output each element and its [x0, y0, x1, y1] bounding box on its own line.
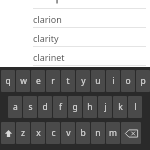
staticText: m	[109, 127, 117, 139]
button[interactable]: Shift	[1, 122, 15, 144]
staticText: c	[51, 127, 56, 139]
button[interactable]: f	[53, 96, 67, 118]
staticText: clarion	[33, 13, 62, 25]
button[interactable]: y	[76, 70, 90, 92]
button[interactable]: v	[61, 122, 75, 144]
staticText: k	[118, 101, 123, 113]
button[interactable]: b	[76, 122, 90, 144]
staticText: g	[72, 101, 78, 113]
staticText: v	[66, 127, 71, 139]
staticText: f	[59, 101, 62, 113]
button[interactable]: m	[106, 122, 120, 144]
staticText: q	[5, 75, 11, 87]
button[interactable]: q	[1, 70, 15, 92]
staticText: i	[112, 75, 115, 87]
staticText: b	[80, 127, 86, 139]
staticText: e	[36, 75, 41, 87]
button[interactable]: w	[16, 70, 30, 92]
button[interactable]: x	[31, 122, 45, 144]
button[interactable]: c	[46, 122, 60, 144]
staticText: w	[20, 75, 27, 87]
button[interactable]: e	[31, 70, 45, 92]
staticText: n	[95, 127, 101, 139]
button[interactable]: d	[38, 96, 52, 118]
button[interactable]	[0, 0, 150, 9]
button[interactable]: clarity	[0, 28, 150, 47]
button[interactable]: t	[61, 70, 75, 92]
button[interactable]: i	[106, 70, 120, 92]
button[interactable]: k	[113, 96, 127, 118]
button[interactable]: u	[91, 70, 105, 92]
button[interactable]: clarion	[0, 9, 150, 28]
staticText: p	[140, 75, 146, 87]
staticText: a	[13, 101, 18, 113]
button[interactable]: l	[128, 96, 142, 118]
staticText: clarinet	[33, 51, 65, 63]
staticText: h	[87, 101, 93, 113]
staticText: x	[36, 127, 41, 139]
staticText: u	[95, 75, 101, 87]
staticText: z	[21, 127, 25, 139]
staticText: s	[28, 101, 33, 113]
staticText: t	[66, 75, 70, 87]
staticText: j	[104, 101, 107, 113]
button[interactable]: p	[136, 70, 150, 92]
staticText: y	[81, 75, 86, 87]
button[interactable]: h	[83, 96, 97, 118]
button[interactable]: a	[8, 96, 22, 118]
staticText: r	[51, 75, 55, 87]
staticText: o	[125, 75, 131, 87]
button[interactable]: z	[16, 122, 30, 144]
staticText: l	[134, 101, 137, 113]
button[interactable]: s	[23, 96, 37, 118]
button[interactable]: o	[121, 70, 135, 92]
staticText: clarity	[33, 32, 59, 44]
button[interactable]: g	[68, 96, 82, 118]
button[interactable]: j	[98, 96, 112, 118]
button[interactable]: Backspace	[121, 122, 141, 144]
button[interactable]: clarinet	[0, 47, 150, 66]
button[interactable]: r	[46, 70, 60, 92]
staticText: d	[42, 101, 48, 113]
button[interactable]: n	[91, 122, 105, 144]
